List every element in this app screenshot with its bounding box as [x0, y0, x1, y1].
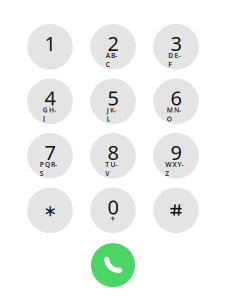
button[interactable]: ∗	[27, 187, 73, 233]
staticText: ∗	[43, 202, 56, 220]
button[interactable]: 1	[27, 24, 73, 70]
staticText: 2	[107, 30, 118, 56]
staticText: TUV	[105, 160, 121, 169]
staticText: 1	[44, 30, 55, 56]
staticText: 4	[44, 84, 55, 111]
staticText: 0	[107, 193, 118, 220]
staticText: MNO	[167, 106, 185, 114]
staticText: 9	[170, 139, 181, 165]
button[interactable]: Call	[91, 243, 135, 287]
button[interactable]	[153, 187, 199, 233]
staticText: 3	[170, 30, 181, 56]
button[interactable]: 7	[27, 133, 73, 179]
button[interactable]: 3	[153, 24, 199, 70]
staticText: JKL	[107, 106, 119, 114]
staticText: 8	[107, 139, 118, 165]
button[interactable]: 0	[90, 187, 136, 233]
staticText: GHI	[43, 106, 57, 114]
staticText: WXYZ	[165, 160, 187, 169]
button[interactable]: 9	[153, 133, 199, 179]
button[interactable]: 6	[153, 78, 199, 124]
staticText: DEF	[168, 51, 184, 60]
staticText: ABC	[106, 51, 120, 60]
button[interactable]: 5	[90, 78, 136, 124]
staticText: +	[110, 213, 115, 224]
button[interactable]: 4	[27, 78, 73, 124]
button[interactable]: 8	[90, 133, 136, 179]
button[interactable]: 2	[90, 24, 136, 70]
staticText: 7	[44, 139, 55, 165]
staticText: 6	[170, 84, 181, 111]
staticText: PQRS	[40, 160, 60, 169]
staticText: 5	[107, 84, 118, 111]
